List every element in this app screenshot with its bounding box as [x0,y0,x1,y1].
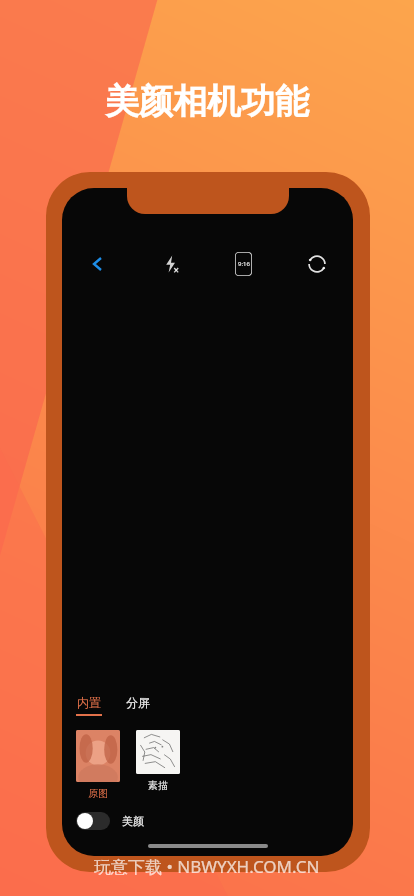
staticText: 9:16 [238,260,250,268]
staticText: 分屏 [126,695,150,710]
staticText: 美颜相机功能 [105,80,309,123]
button[interactable]: 素描 [136,730,180,792]
staticText: 美颜 [122,814,144,828]
button[interactable]: Back [62,246,134,282]
button[interactable]: 分屏 [126,695,150,710]
button[interactable]: Switch camera [280,246,353,282]
button[interactable]: Aspect ratio 9:16 [207,246,280,282]
button[interactable]: 美颜 [76,812,144,830]
staticText: 内置 [77,695,101,710]
button[interactable]: Flash off [134,246,207,282]
button[interactable]: 内置 [76,695,102,716]
staticText: 玩意下载 • NBWYXH.COM.CN [94,855,320,878]
staticText: 素描 [148,779,168,792]
button[interactable]: 原图 [76,730,120,800]
staticText: 原图 [88,787,108,800]
